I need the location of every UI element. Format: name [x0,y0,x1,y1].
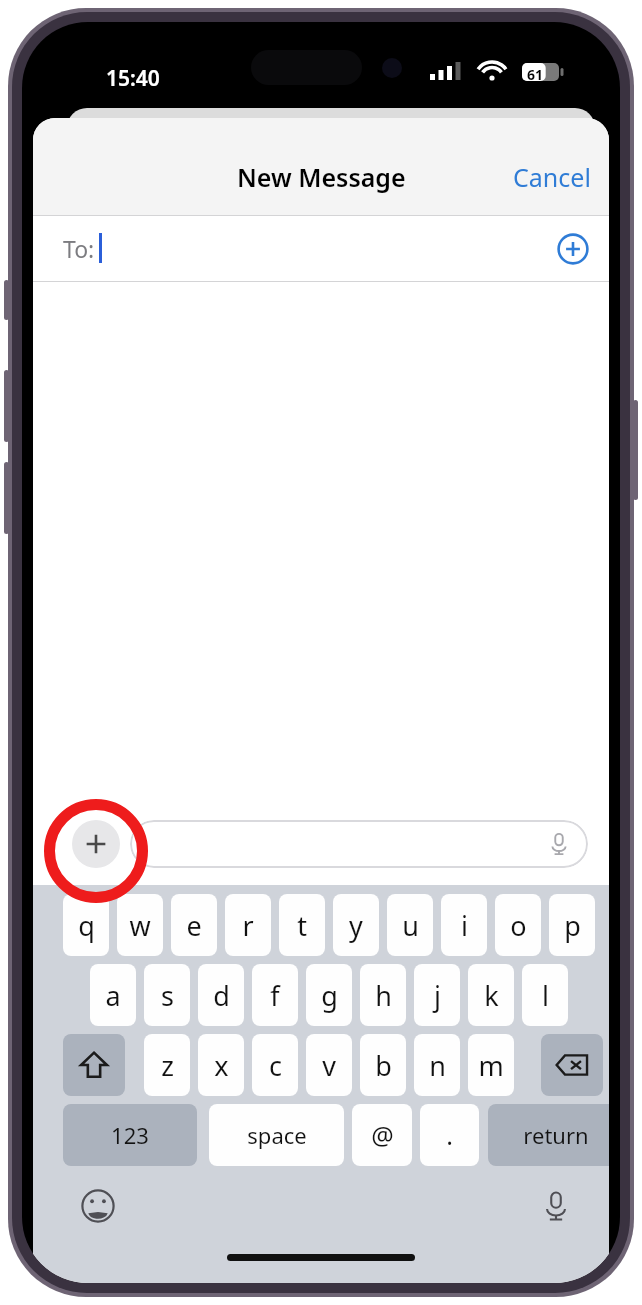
staticText: Cancel [513,160,591,194]
button[interactable]: o [495,894,541,956]
staticText: x [214,1047,229,1084]
button[interactable]: space [209,1104,344,1166]
button[interactable]: f [252,964,298,1026]
button[interactable]: r [225,894,271,956]
staticText: t [297,907,307,944]
staticText: New Message [237,160,406,194]
button[interactable]: d [198,964,244,1026]
staticText: r [242,907,254,944]
button[interactable]: Dictation [533,1183,579,1229]
staticText: l [542,977,549,1014]
button[interactable]: x [198,1034,244,1096]
button[interactable]: j [414,964,460,1026]
staticText: j [434,977,441,1014]
staticText: s [161,977,174,1014]
staticText: d [213,977,230,1014]
staticText: @ [371,1118,394,1152]
staticText: . [446,1118,453,1152]
button[interactable]: e [171,894,217,956]
button[interactable]: w [117,894,163,956]
staticText: h [375,977,392,1014]
staticText: return [523,1120,589,1150]
staticText: 123 [111,1120,149,1150]
button[interactable]: m [468,1034,514,1096]
button[interactable]: p [549,894,595,956]
button[interactable]: Shift [63,1034,125,1096]
button[interactable]: v [306,1034,352,1096]
button[interactable]: i [441,894,487,956]
button[interactable]: More options [72,820,120,868]
staticText: g [321,977,338,1014]
staticText: y [349,907,363,944]
button[interactable]: a [90,964,136,1026]
staticText: i [461,907,468,944]
staticText: m [478,1047,504,1084]
button[interactable]: b [360,1034,406,1096]
staticText: n [429,1047,446,1084]
button[interactable]: q [63,894,109,956]
button[interactable]: k [468,964,514,1026]
button[interactable]: To: [33,216,609,281]
staticText: 61 [527,65,544,84]
staticText: z [161,1047,174,1084]
staticText: p [564,907,581,944]
staticText: v [322,1047,336,1084]
staticText: 15:40 [106,64,160,93]
staticText: u [402,907,419,944]
button[interactable]: n [414,1034,460,1096]
staticText: k [484,977,499,1014]
staticText: a [105,977,121,1014]
button[interactable]: c [252,1034,298,1096]
staticText: c [269,1047,282,1084]
button[interactable]: Emoji [75,1183,121,1229]
staticText: f [270,977,280,1014]
button[interactable]: h [360,964,406,1026]
button[interactable]: Dictate [130,820,588,868]
button[interactable]: . [420,1104,479,1166]
button[interactable]: Cancel [495,150,609,204]
button[interactable]: 123 [63,1104,197,1166]
button[interactable]: Delete [541,1034,603,1096]
button[interactable]: l [522,964,568,1026]
button[interactable]: Add contact [549,225,597,273]
button[interactable]: y [333,894,379,956]
other: Dictate [544,829,574,859]
button[interactable]: return [488,1104,609,1166]
staticText: w [129,907,151,944]
staticText: To: [63,233,95,264]
button[interactable]: g [306,964,352,1026]
button[interactable]: t [279,894,325,956]
button[interactable]: @ [352,1104,412,1166]
button[interactable]: z [144,1034,190,1096]
staticText: o [510,907,527,944]
button[interactable]: s [144,964,190,1026]
staticText: space [247,1120,307,1150]
staticText: b [375,1047,392,1084]
staticText: e [186,907,202,944]
staticText: q [78,907,95,944]
button[interactable]: u [387,894,433,956]
